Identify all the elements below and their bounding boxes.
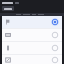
button[interactable]: Tab: [2, 6, 14, 11]
button[interactable]: Select: [51, 44, 59, 52]
button[interactable]: List item 1: [2, 16, 62, 28]
button[interactable]: Title: [2, 2, 13, 4]
button[interactable]: List item 2: [2, 29, 62, 41]
button[interactable]: List item 4: [2, 55, 62, 64]
button[interactable]: Select: [51, 56, 59, 64]
button[interactable]: Select: [51, 31, 59, 39]
button[interactable]: List item 3: [2, 42, 62, 54]
button[interactable]: Selected: [51, 18, 59, 26]
